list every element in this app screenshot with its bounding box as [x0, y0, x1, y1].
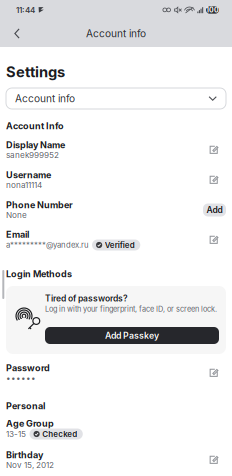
staticText: Password [6, 363, 50, 373]
staticText: nona11114 [6, 180, 42, 190]
button[interactable]: Account info [6, 88, 226, 109]
staticText: Account info [86, 27, 146, 39]
staticText: Settings [6, 63, 65, 81]
button[interactable]: Edit birthday [204, 450, 224, 470]
staticText: Nov 15, 2012 [6, 460, 54, 470]
button[interactable]: Edit email [204, 230, 224, 250]
staticText: Log in with your fingerprint, face ID, o… [45, 305, 217, 313]
button[interactable]: Edit display name [204, 140, 224, 160]
staticText: Checked [42, 429, 77, 439]
button[interactable]: Edit password [204, 363, 224, 383]
staticText: None [6, 210, 27, 220]
staticText: Username [6, 170, 51, 180]
staticText: Add [206, 205, 222, 215]
staticText: Birthday [6, 450, 43, 460]
staticText: 13-15 [6, 429, 26, 439]
button[interactable]: Edit username [204, 170, 224, 190]
staticText: Verified [105, 240, 135, 250]
staticText: Personal [6, 401, 45, 411]
staticText: sanek999952 [6, 150, 59, 160]
staticText: Display Name [6, 140, 65, 150]
staticText: 11:44 [16, 5, 35, 15]
button[interactable]: Back [6, 20, 28, 46]
staticText: Tired of passwords? [45, 293, 128, 303]
staticText: •••••• [6, 373, 36, 383]
staticText: Email [6, 229, 29, 240]
staticText: Add Passkey [105, 330, 159, 341]
button[interactable]: Add [203, 203, 226, 216]
staticText: Login Methods [6, 269, 72, 279]
staticText: Age Group [6, 418, 54, 429]
button[interactable]: Add Passkey [45, 327, 219, 344]
staticText: Account info [15, 92, 75, 104]
staticText: Account Info [6, 121, 64, 131]
staticText: a*********@yandex.ru [6, 240, 89, 250]
staticText: 100 [206, 6, 219, 14]
staticText: Phone Number [6, 200, 73, 210]
